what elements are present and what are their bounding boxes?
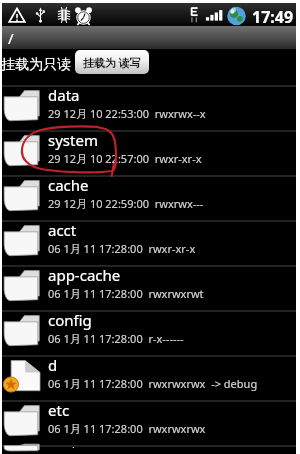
staticText: system xyxy=(48,130,98,150)
staticText: acct xyxy=(48,220,77,240)
staticText: 17:49 xyxy=(252,6,294,28)
staticText: 29 12月 10 22:53:00 rwxrwx--x xyxy=(48,106,206,121)
staticText: d xyxy=(48,355,58,375)
button[interactable]: mnt xyxy=(2,447,296,454)
button[interactable]: acct xyxy=(2,222,296,267)
button[interactable]: etc xyxy=(2,402,296,447)
button[interactable]: data xyxy=(2,87,296,132)
staticText: / xyxy=(8,28,14,48)
staticText: config xyxy=(48,310,92,330)
staticText: etc xyxy=(48,400,70,420)
staticText: 06 1月 11 17:28:00 rwxrwxrwx xyxy=(48,421,206,436)
staticText: 06 1月 11 17:28:00 rwxrwxrwx -> debug xyxy=(48,376,258,391)
staticText: cache xyxy=(48,175,89,195)
staticText: 06 1月 11 17:28:00 rwxrwxrwt xyxy=(48,286,204,301)
button[interactable]: config xyxy=(2,312,296,357)
staticText: 29 12月 10 22:57:00 rwxr-xr-x xyxy=(48,151,202,166)
button[interactable]: cache xyxy=(2,177,296,222)
staticText: 挂载为 读写 xyxy=(83,55,141,70)
button[interactable]: 挂载为 读写 xyxy=(75,50,149,74)
staticText: app-cache xyxy=(48,265,121,285)
button[interactable]: app-cache xyxy=(2,267,296,312)
button[interactable]: d xyxy=(2,357,296,402)
staticText: 29 12月 10 22:59:00 rwxrwx--- xyxy=(48,196,204,211)
staticText: 06 1月 11 17:28:00 rwxr-xr-x xyxy=(48,241,196,256)
staticText: data xyxy=(48,85,80,105)
button[interactable]: system xyxy=(2,132,296,177)
staticText: 06 1月 11 17:28:00 r-x------ xyxy=(48,331,184,346)
staticText: 挂载为只读 xyxy=(1,56,71,74)
staticText: mnt xyxy=(48,441,77,448)
button[interactable]: / xyxy=(2,26,296,49)
